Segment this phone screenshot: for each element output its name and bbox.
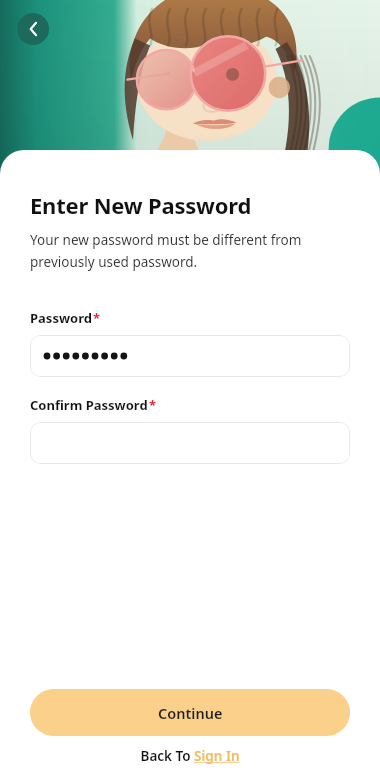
staticText: Your new password must be different from… bbox=[30, 231, 302, 271]
button[interactable] bbox=[30, 335, 350, 377]
staticText: Enter New Password bbox=[30, 190, 252, 220]
button[interactable]: Back To Sign In bbox=[140, 747, 240, 765]
staticText: Confirm Password bbox=[30, 396, 148, 414]
button[interactable]: Continue bbox=[30, 689, 350, 736]
staticText: Continue bbox=[158, 703, 223, 723]
staticText: * bbox=[93, 309, 101, 327]
staticText: Password bbox=[30, 309, 92, 327]
button[interactable]: Back bbox=[17, 13, 49, 45]
staticText: * bbox=[149, 396, 157, 414]
button[interactable] bbox=[30, 422, 350, 464]
